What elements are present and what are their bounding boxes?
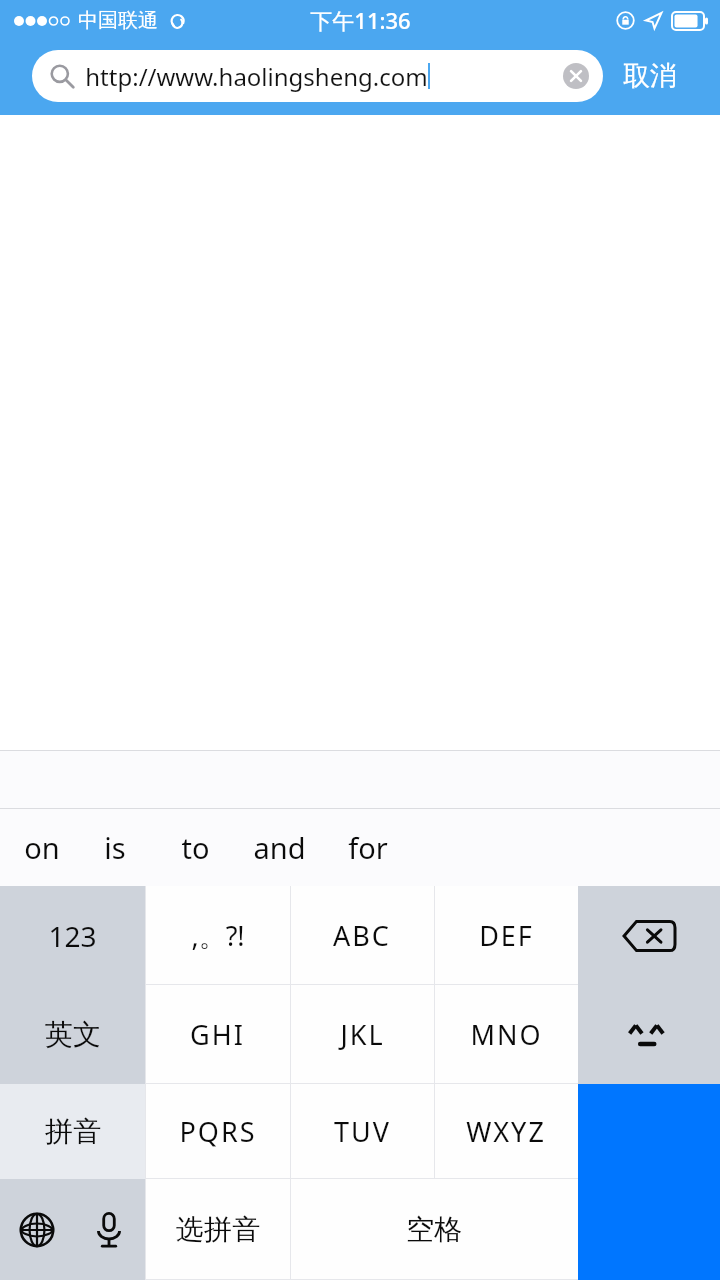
button[interactable]: DEF [434, 886, 578, 985]
button[interactable]: ABC [290, 886, 434, 985]
button[interactable]: 英文 [0, 985, 145, 1084]
button[interactable]: 选拼音 [145, 1179, 290, 1280]
staticText: 取消 [623, 59, 677, 93]
button[interactable]: Voice input [73, 1179, 145, 1280]
staticText: to [181, 828, 210, 867]
button[interactable]: TUV [290, 1084, 434, 1179]
staticText: TUV [334, 1113, 391, 1150]
staticText: GHI [190, 1016, 245, 1053]
staticText: PQRS [179, 1113, 257, 1150]
staticText: 拼音 [45, 1114, 101, 1149]
staticText: is [104, 828, 126, 867]
staticText: 中国联通 [78, 8, 158, 33]
staticText: DEF [479, 917, 534, 954]
staticText: JKL [340, 1016, 385, 1053]
button[interactable]: to [181, 809, 210, 886]
staticText: 下午11:36 [310, 5, 411, 35]
button[interactable]: JKL [290, 985, 434, 1084]
button[interactable]: Clear text [553, 53, 599, 99]
button[interactable]: Emoji [578, 985, 720, 1084]
staticText: 123 [48, 917, 97, 955]
button[interactable]: WXYZ [434, 1084, 578, 1179]
button[interactable]: MNO [434, 985, 578, 1084]
staticText: 选拼音 [176, 1212, 260, 1247]
button[interactable]: 取消 [617, 53, 683, 99]
staticText: 空格 [406, 1212, 462, 1247]
button[interactable]: on [24, 809, 60, 886]
button[interactable]: is [104, 809, 126, 886]
staticText: 英文 [45, 1017, 101, 1052]
button[interactable]: http://www.haolingsheng.com [32, 50, 603, 102]
staticText: ABC [333, 917, 391, 954]
staticText: WXYZ [466, 1113, 546, 1150]
button[interactable]: for [348, 809, 388, 886]
button[interactable]: and [253, 809, 306, 886]
button[interactable]: Switch keyboard [0, 1179, 73, 1280]
button[interactable]: 空格 [290, 1179, 578, 1280]
button[interactable]: GHI [145, 985, 290, 1084]
button[interactable]: PQRS [145, 1084, 290, 1179]
staticText: for [348, 828, 388, 867]
button[interactable]: Backspace [578, 886, 720, 985]
button[interactable]: 123 [0, 886, 145, 985]
staticText: on [24, 828, 60, 867]
button[interactable]: ,。?! [145, 886, 290, 985]
button[interactable]: 拼音 [0, 1084, 145, 1179]
staticText: and [253, 828, 306, 867]
staticText: ,。?! [191, 917, 245, 954]
staticText: http://www.haolingsheng.com [85, 60, 428, 93]
staticText: MNO [470, 1016, 543, 1053]
